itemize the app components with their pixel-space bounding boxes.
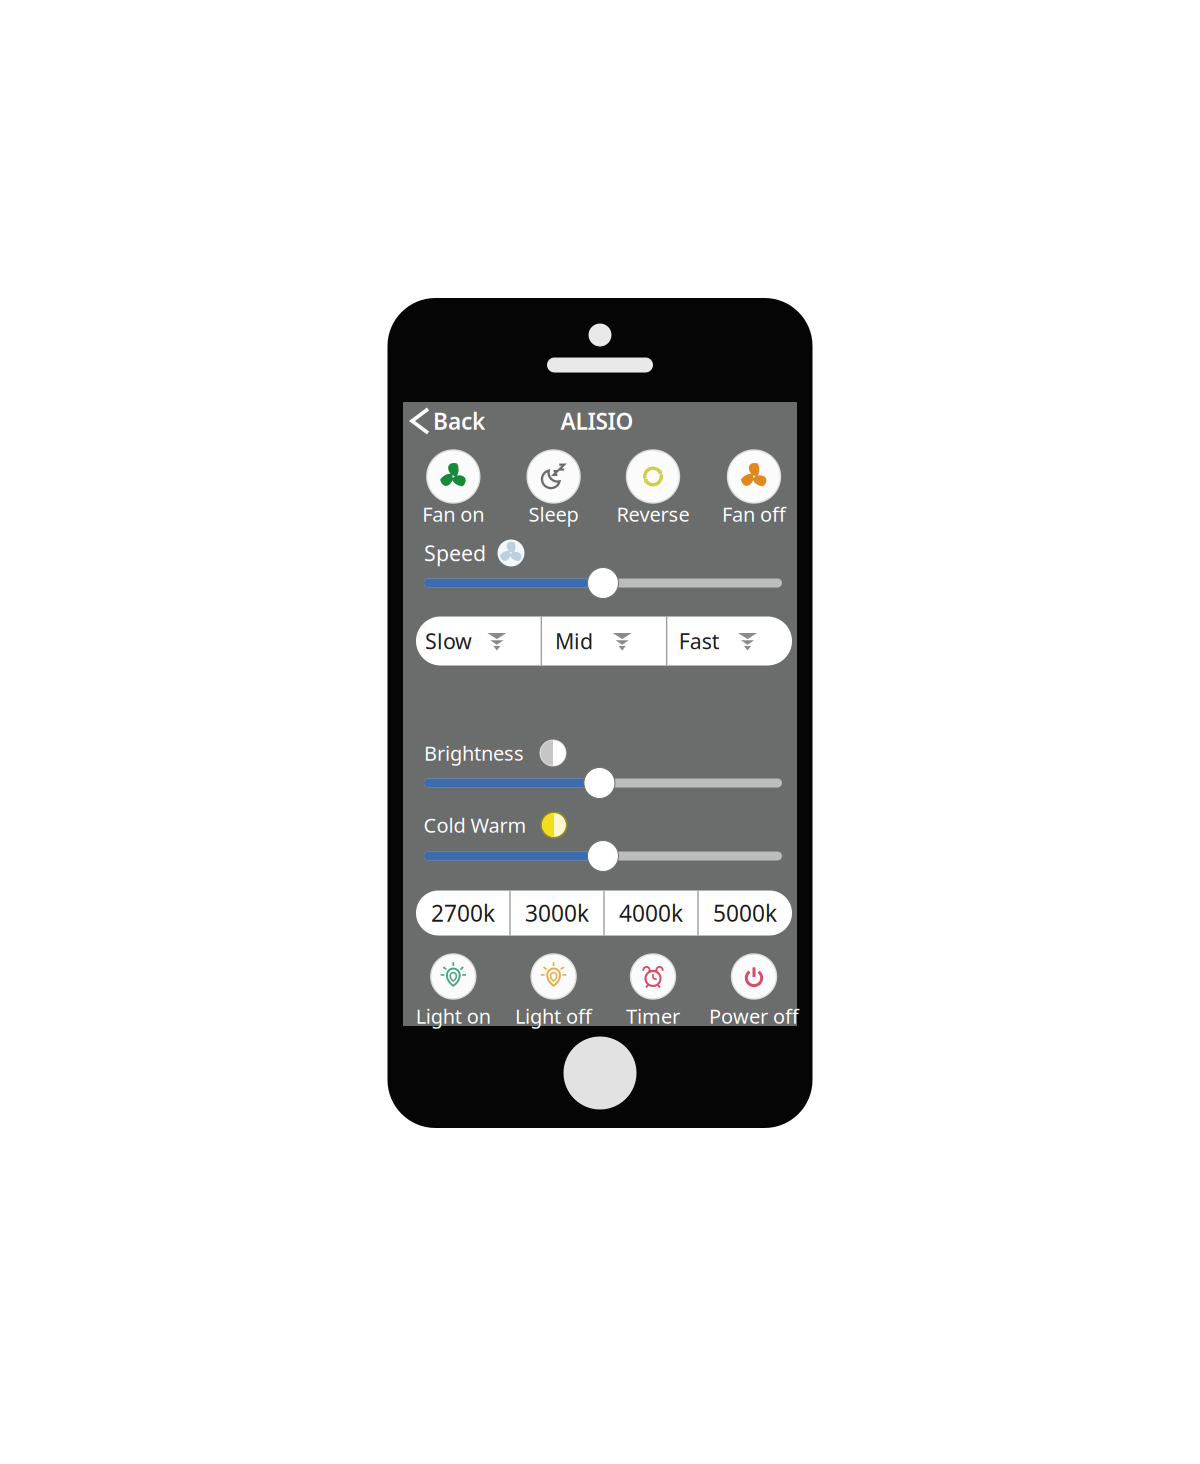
- button[interactable]: Timer: [605, 954, 700, 1022]
- button[interactable]: Light on: [406, 954, 501, 1022]
- button[interactable]: 5000k: [698, 890, 792, 935]
- button[interactable]: 3000k: [510, 890, 604, 935]
- staticText: 2700k: [431, 898, 495, 928]
- button[interactable]: Back: [409, 406, 485, 436]
- button[interactable]: 4000k: [604, 890, 698, 935]
- button[interactable]: 2700k: [416, 890, 510, 935]
- button[interactable]: Slow: [416, 616, 541, 665]
- staticText: Mid: [555, 627, 593, 655]
- button[interactable]: Reverse: [605, 450, 700, 526]
- staticText: Fast: [679, 627, 720, 655]
- staticText: 3000k: [525, 898, 589, 928]
- staticText: Brightness: [424, 740, 524, 766]
- staticText: Timer: [626, 1003, 680, 1029]
- staticText: Back: [433, 406, 485, 436]
- button[interactable]: Mid: [541, 616, 667, 665]
- button[interactable]: Fast: [667, 616, 792, 665]
- staticText: Sleep: [529, 501, 579, 527]
- button[interactable]: Sleep: [506, 450, 601, 526]
- staticText: Speed: [424, 539, 486, 567]
- staticText: Cold Warm: [423, 812, 526, 838]
- staticText: Reverse: [616, 501, 689, 527]
- staticText: ALISIO: [560, 406, 633, 436]
- button[interactable]: Fan off: [706, 450, 801, 526]
- staticText: Fan on: [422, 501, 484, 527]
- staticText: 5000k: [713, 898, 777, 928]
- staticText: Slow: [425, 627, 472, 655]
- staticText: Fan off: [722, 501, 786, 527]
- staticText: 4000k: [619, 898, 683, 928]
- button[interactable]: Light off: [506, 954, 601, 1022]
- staticText: Light off: [515, 1003, 592, 1029]
- staticText: Light on: [416, 1003, 491, 1029]
- staticText: Power off: [709, 1003, 799, 1029]
- button[interactable]: Fan on: [406, 450, 501, 526]
- button[interactable]: Power off: [706, 954, 801, 1022]
